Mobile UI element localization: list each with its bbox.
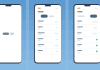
button[interactable] <box>90 15 97 18</box>
button[interactable] <box>41 15 48 18</box>
